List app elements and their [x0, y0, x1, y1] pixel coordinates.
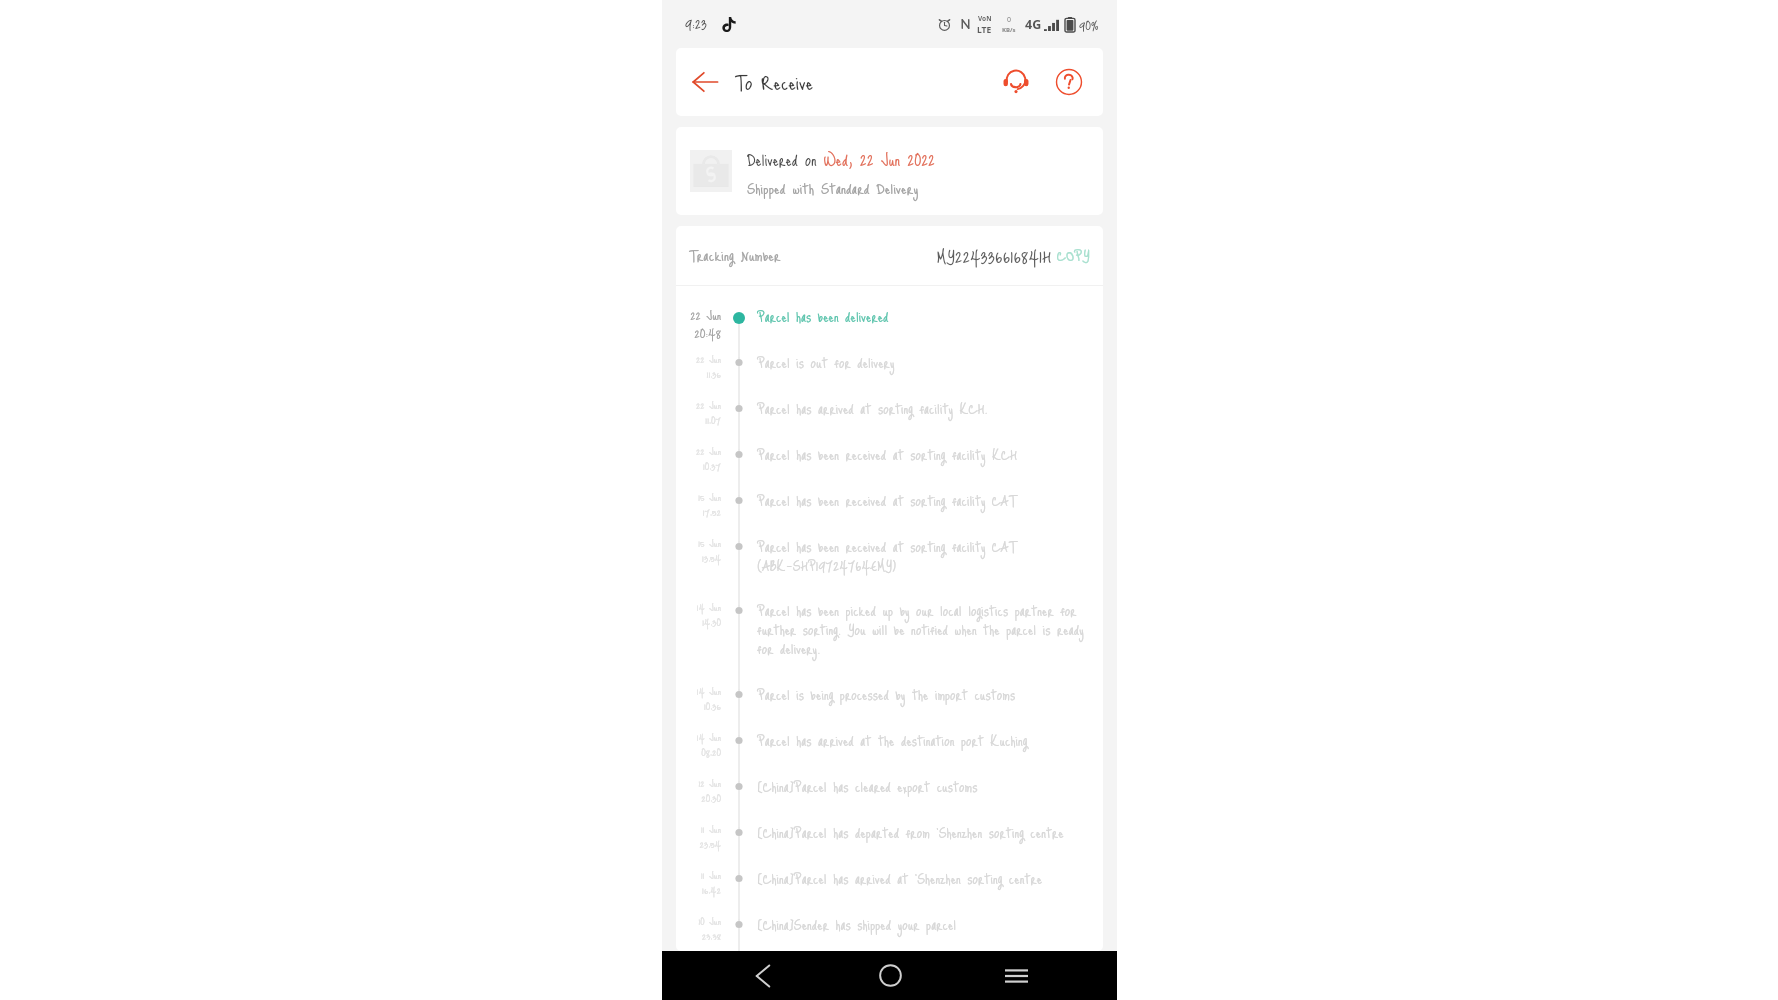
staticText: 14 Jun: [676, 682, 721, 700]
staticText: 11 Jun: [676, 820, 721, 838]
button[interactable]: 15 Jun: [676, 542, 1103, 606]
staticText: To Receive: [735, 65, 814, 100]
staticText: 12 Jun: [676, 774, 721, 792]
staticText: 22 Jun: [676, 396, 721, 414]
button[interactable]: 14 Jun: [676, 606, 1103, 690]
staticText: 16:42: [676, 881, 721, 900]
staticText: 15 Jun: [676, 488, 721, 506]
staticText: 11:07: [676, 411, 721, 430]
staticText: Shipped with Standard Delivery: [747, 175, 919, 202]
staticText: Parcel has arrived at the destination po…: [757, 728, 1028, 754]
staticText: Parcel has been received at sorting faci…: [757, 442, 1017, 468]
staticText: 13:54: [676, 549, 721, 568]
staticText: 4G: [1025, 16, 1042, 33]
staticText: Parcel is being processed by the import …: [757, 682, 1016, 708]
button[interactable]: 22 Jun: [676, 358, 1103, 404]
staticText: 23:38: [676, 927, 721, 940]
staticText: [China]Parcel has arrived at 'Shenzhen s…: [757, 866, 1043, 892]
staticText: 0: [1007, 15, 1012, 25]
button[interactable]: Back: [737, 951, 789, 1000]
staticText: 23:54: [676, 835, 721, 854]
staticText: Tracking Number: [689, 242, 781, 269]
staticText: 9:23: [685, 11, 707, 37]
staticText: MY224336616841H: [937, 240, 1052, 272]
button[interactable]: 10 Jun: [676, 920, 1103, 951]
staticText: 15 Jun: [676, 534, 721, 552]
button[interactable]: COPY: [1057, 242, 1090, 269]
staticText: Parcel is out for delivery: [757, 350, 895, 376]
button[interactable]: 14 Jun: [676, 690, 1103, 736]
staticText: 14 Jun: [676, 728, 721, 746]
button[interactable]: 22 Jun: [676, 404, 1103, 450]
staticText: 22 Jun: [676, 304, 721, 326]
staticText: 14 Jun: [676, 598, 721, 616]
staticText: [China]Parcel has departed from 'Shenzhe…: [757, 820, 1064, 846]
staticText: LTE: [977, 24, 992, 34]
staticText: 08:20: [676, 743, 721, 762]
button[interactable]: 11 Jun: [676, 874, 1103, 920]
staticText: 11 Jun: [676, 866, 721, 884]
staticText: 20:30: [676, 789, 721, 808]
staticText: 14:30: [676, 613, 721, 632]
staticText: 10:36: [676, 697, 721, 716]
staticText: 10 Jun: [676, 912, 721, 930]
staticText: Parcel has been picked up by our local l…: [757, 598, 1084, 662]
staticText: 90%: [1079, 13, 1099, 36]
staticText: Parcel has arrived at sorting facility K…: [757, 396, 988, 422]
button[interactable]: 14 Jun: [676, 736, 1103, 782]
staticText: 22 Jun: [676, 350, 721, 368]
staticText: 22 Jun: [676, 442, 721, 460]
button[interactable]: 12 Jun: [676, 782, 1103, 828]
staticText: Parcel has been received at sorting faci…: [757, 534, 1017, 579]
button[interactable]: Help: [1051, 64, 1087, 100]
button[interactable]: 11 Jun: [676, 828, 1103, 874]
staticText: 17:52: [676, 503, 721, 522]
staticText: 20:48: [676, 321, 721, 344]
button[interactable]: 22 Jun: [676, 450, 1103, 496]
staticText: [China]Sender has shipped your parcel: [757, 912, 957, 938]
button[interactable]: Customer support chat: [998, 64, 1034, 100]
staticText: Parcel has been received at sorting faci…: [757, 488, 1017, 514]
button[interactable]: Recent apps: [990, 951, 1042, 1000]
staticText: 11:36: [676, 365, 721, 384]
staticText: Delivered on Wed, 22 Jun 2022: [747, 146, 935, 175]
staticText: 10:37: [676, 457, 721, 476]
button[interactable]: 22 Jun: [676, 312, 1103, 358]
button[interactable]: 15 Jun: [676, 496, 1103, 542]
button[interactable]: Home: [864, 951, 916, 1000]
staticText: [China]Parcel has cleared export customs: [757, 774, 978, 800]
button[interactable]: Back: [688, 65, 722, 99]
staticText: KB/s: [1002, 26, 1016, 34]
staticText: VoN: [978, 14, 992, 23]
staticText: Parcel has been delivered: [757, 304, 889, 330]
button[interactable]: Delivered on Wed, 22 Jun 2022: [676, 127, 1103, 215]
staticText: COPY: [1057, 242, 1090, 269]
